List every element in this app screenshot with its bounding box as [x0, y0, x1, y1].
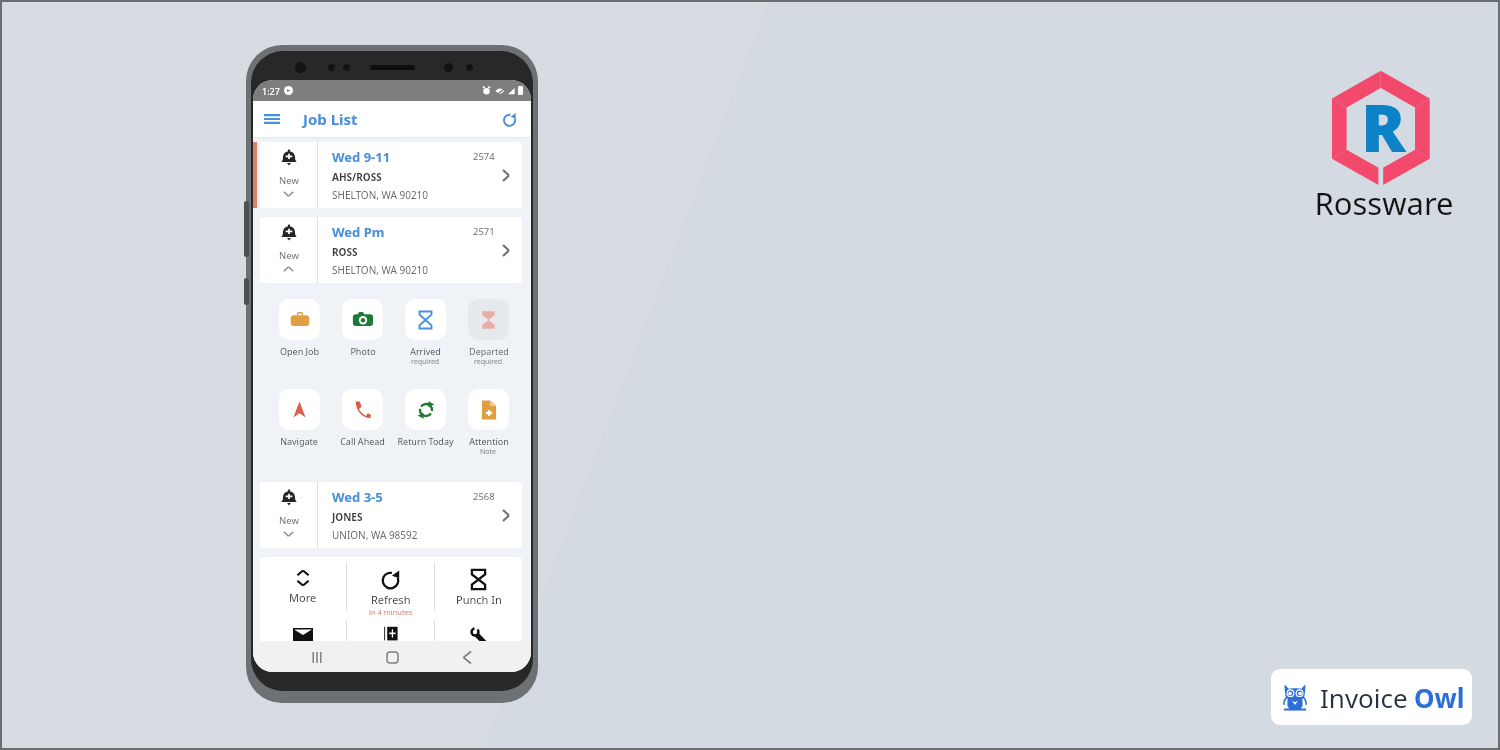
- button[interactable]: Refresh: [496, 106, 522, 132]
- button[interactable]: New: [260, 142, 522, 208]
- button[interactable]: Punch In: [435, 557, 522, 615]
- staticText: AHS/ROSS: [332, 170, 382, 184]
- button[interactable]: More: [260, 557, 346, 615]
- button[interactable]: Back: [456, 646, 478, 668]
- button[interactable]: Home: [381, 646, 403, 668]
- button[interactable]: Messages: [260, 615, 346, 655]
- staticText: UNION, WA 98592: [332, 528, 418, 542]
- staticText: 2574: [473, 150, 495, 163]
- button[interactable]: Arrived: [394, 299, 457, 367]
- staticText: Job List: [303, 109, 358, 129]
- button[interactable]: New: [260, 482, 522, 548]
- button[interactable]: Photo: [331, 299, 394, 357]
- staticText: Wed 3-5: [332, 488, 383, 506]
- staticText: Navigate: [280, 435, 318, 447]
- button[interactable]: Open Job: [267, 299, 331, 357]
- button[interactable]: Refresh: [347, 557, 434, 615]
- staticText: JONES: [332, 510, 363, 524]
- staticText: Note: [480, 447, 497, 457]
- staticText: Refresh: [371, 592, 411, 607]
- staticText: More: [289, 590, 317, 605]
- staticText: Return Today: [397, 435, 454, 447]
- button[interactable]: Departed: [457, 299, 520, 367]
- staticText: Punch In: [456, 592, 502, 607]
- staticText: Rossware: [1314, 182, 1454, 216]
- button[interactable]: Return Today: [394, 389, 457, 447]
- staticText: New: [279, 174, 299, 187]
- button[interactable]: Menu: [258, 105, 286, 133]
- staticText: required: [411, 357, 440, 367]
- staticText: Open Job: [280, 345, 319, 357]
- staticText: Wed Pm: [332, 223, 385, 241]
- button[interactable]: Invoice: [1271, 669, 1472, 725]
- staticText: New: [279, 249, 299, 262]
- staticText: Owl: [1414, 680, 1465, 715]
- staticText: SHELTON, WA 90210: [332, 188, 429, 202]
- button[interactable]: New: [260, 217, 522, 283]
- staticText: ROSS: [332, 245, 358, 259]
- staticText: Attention: [469, 435, 509, 447]
- button[interactable]: Navigate: [267, 389, 331, 447]
- button[interactable]: Attention: [457, 389, 520, 457]
- button[interactable]: Tools: [435, 615, 522, 655]
- staticText: Invoice: [1320, 680, 1408, 715]
- button[interactable]: Add: [347, 615, 434, 655]
- staticText: required: [474, 357, 503, 367]
- staticText: 2571: [473, 225, 495, 238]
- staticText: in 4 minutes: [369, 607, 413, 615]
- staticText: R: [1361, 81, 1406, 171]
- staticText: Departed: [469, 345, 509, 357]
- staticText: Photo: [350, 345, 376, 357]
- staticText: Wed 9-11: [332, 148, 391, 166]
- button[interactable]: Recents: [306, 646, 328, 668]
- button[interactable]: Call Ahead: [331, 389, 394, 447]
- staticText: Call Ahead: [340, 435, 385, 447]
- staticText: 2568: [473, 490, 495, 503]
- staticText: SHELTON, WA 90210: [332, 263, 429, 277]
- staticText: Arrived: [410, 345, 441, 357]
- staticText: 1:27: [262, 85, 280, 97]
- staticText: New: [279, 514, 299, 527]
